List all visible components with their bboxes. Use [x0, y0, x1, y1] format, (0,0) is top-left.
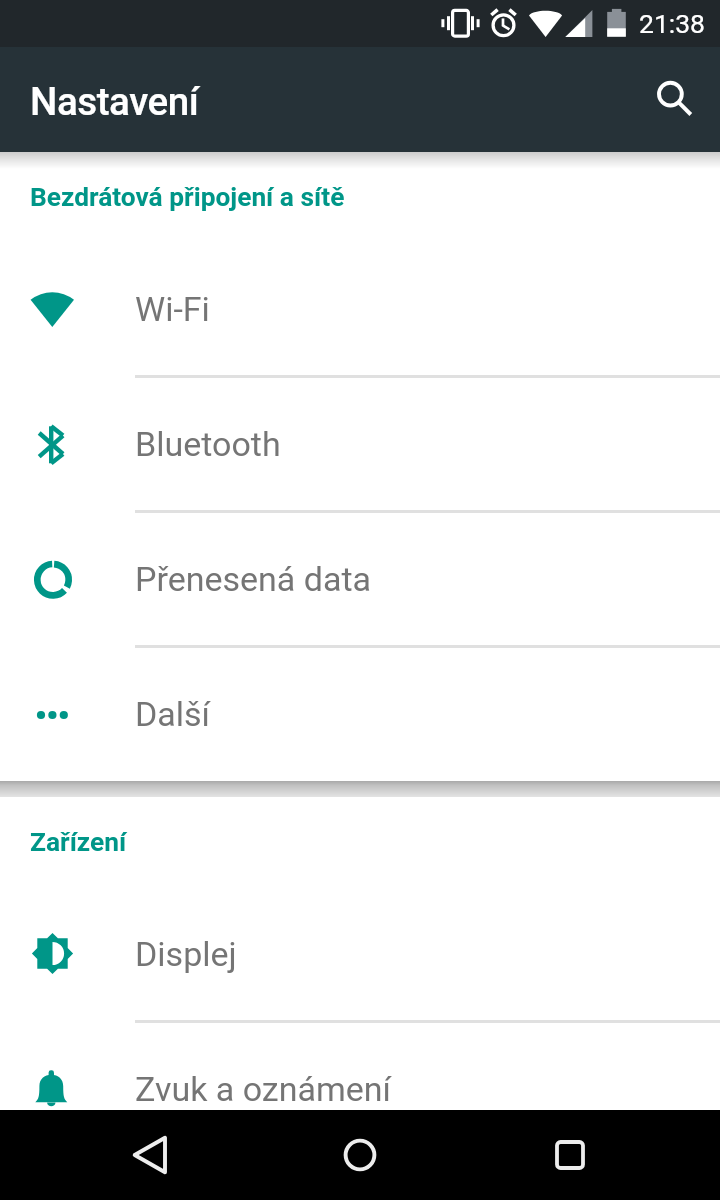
staticText: 21:38 — [639, 8, 705, 39]
button[interactable]: Bluetooth — [0, 376, 720, 511]
staticText: Bluetooth — [135, 424, 281, 464]
button[interactable]: Displej — [0, 886, 720, 1021]
button[interactable]: Wi-Fi — [0, 241, 720, 376]
button[interactable]: Zvuk a oznámení — [0, 1021, 720, 1156]
button[interactable]: Search — [638, 66, 706, 134]
button[interactable]: Recent apps — [525, 1110, 615, 1200]
staticText: Displej — [135, 934, 237, 974]
staticText: Wi-Fi — [135, 289, 210, 329]
button[interactable]: Back — [105, 1110, 195, 1200]
button[interactable]: Přenesená data — [0, 511, 720, 646]
button[interactable]: Home — [315, 1110, 405, 1200]
staticText: Bezdrátová připojení a sítě — [30, 182, 345, 213]
button[interactable]: Další — [0, 646, 720, 781]
staticText: Zařízení — [30, 827, 127, 858]
staticText: Zvuk a oznámení — [135, 1069, 392, 1109]
staticText: Přenesená data — [135, 559, 372, 599]
staticText: Nastavení — [30, 79, 199, 124]
staticText: Další — [135, 694, 211, 734]
